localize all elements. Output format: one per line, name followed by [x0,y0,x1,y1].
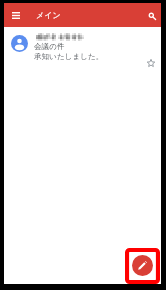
button[interactable]: Navigation menu [8,7,24,23]
staticText: メイン [36,10,61,20]
staticText: 会議の件 [34,42,65,52]
button[interactable]: Search [144,8,160,24]
staticText: 承知いたしました。 [34,52,104,62]
button[interactable]: 会議の件 [4,27,161,75]
button[interactable]: Compose [132,255,153,276]
button[interactable]: Star [143,55,158,70]
